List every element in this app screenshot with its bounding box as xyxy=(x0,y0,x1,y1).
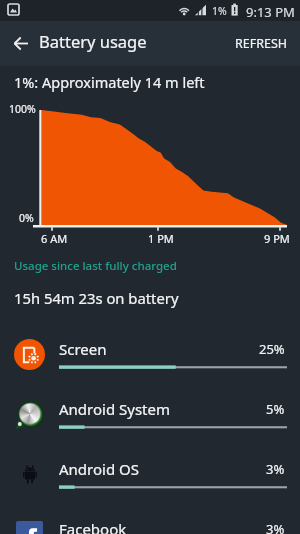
staticText: 1%: Approximately 14 m left xyxy=(14,72,205,92)
staticText: Facebook xyxy=(59,519,127,534)
button[interactable]: Android System xyxy=(0,391,300,447)
button[interactable]: Back xyxy=(3,26,38,61)
staticText: 100% xyxy=(9,102,36,116)
button[interactable]: Facebook xyxy=(0,511,300,534)
staticText: 5% xyxy=(266,400,285,418)
staticText: 1% xyxy=(212,4,227,18)
staticText: Screen xyxy=(59,339,107,359)
button[interactable]: REFRESH xyxy=(223,23,300,64)
staticText: Battery usage xyxy=(39,30,147,52)
staticText: Android OS xyxy=(59,459,139,479)
button[interactable]: Screen xyxy=(0,331,300,387)
staticText: 3% xyxy=(266,520,285,534)
staticText: 25% xyxy=(259,340,285,358)
staticText: 9 PM xyxy=(264,231,290,246)
staticText: 9:13 PM xyxy=(246,3,295,21)
staticText: 3% xyxy=(266,460,285,478)
staticText: 0% xyxy=(19,211,34,225)
staticText: Usage since last fully charged xyxy=(14,258,177,274)
staticText: 15h 54m 23s on battery xyxy=(14,288,179,308)
staticText: 1 PM xyxy=(148,231,174,246)
staticText: REFRESH xyxy=(235,35,288,52)
staticText: Android System xyxy=(59,399,171,419)
staticText: 6 AM xyxy=(41,231,68,246)
button[interactable]: Android OS xyxy=(0,451,300,507)
